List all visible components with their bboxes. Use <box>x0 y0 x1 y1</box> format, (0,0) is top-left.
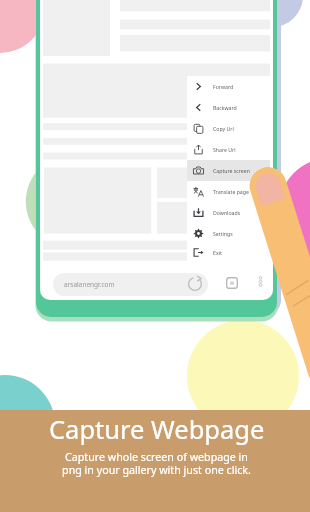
button[interactable]: Reload <box>186 275 204 293</box>
button[interactable]: Copy Url <box>187 118 270 139</box>
staticText: Exit <box>213 249 222 256</box>
button[interactable]: Forward <box>187 76 270 97</box>
button[interactable]: Tabs <box>226 277 238 289</box>
button[interactable]: Downloads <box>187 202 270 223</box>
button[interactable]: Backward <box>187 97 270 118</box>
button[interactable]: Exit <box>187 244 270 261</box>
button[interactable]: More options <box>255 276 266 287</box>
staticText: Translate page <box>213 188 249 195</box>
staticText: Capture whole screen of webpage in png i… <box>62 450 251 477</box>
staticText: Forward <box>213 83 234 90</box>
button[interactable]: arsalanengr.com <box>53 273 208 296</box>
staticText: Downloads <box>213 209 241 216</box>
staticText: Settings <box>213 230 233 237</box>
button[interactable]: Settings <box>187 223 270 244</box>
button[interactable]: Share Url <box>187 139 270 160</box>
staticText: Capture Webpage <box>49 412 265 447</box>
staticText: Backward <box>213 104 237 111</box>
staticText: Capture screen <box>213 167 250 174</box>
staticText: arsalanengr.com <box>64 280 115 289</box>
staticText: Copy Url <box>213 125 234 132</box>
button[interactable]: Translate page <box>187 181 270 202</box>
button[interactable]: Capture screen <box>187 160 270 181</box>
staticText: Share Url <box>213 146 236 153</box>
